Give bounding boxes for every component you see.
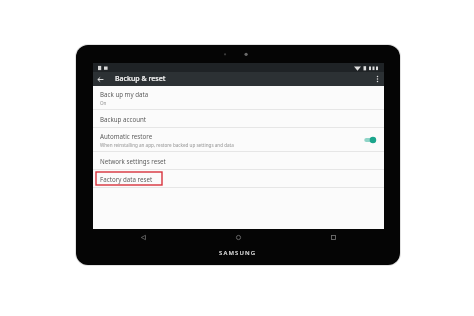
button[interactable]: Back up my data xyxy=(93,86,384,109)
button[interactable]: Backup account xyxy=(93,110,384,127)
button[interactable]: Home xyxy=(231,230,245,244)
staticText: Automatic restore xyxy=(100,132,153,140)
button[interactable]: Automatic restore toggle xyxy=(362,135,377,145)
button[interactable]: More options xyxy=(370,72,384,86)
staticText: Backup & reset xyxy=(115,74,166,84)
staticText: When reinstalling an app, restore backed… xyxy=(100,142,234,148)
button[interactable]: Automatic restore xyxy=(93,128,384,151)
button[interactable]: Factory data reset xyxy=(93,170,384,187)
staticText: Backup account xyxy=(100,115,147,123)
button[interactable]: Navigate up xyxy=(93,72,107,86)
staticText: On xyxy=(100,100,107,106)
staticText: SAMSUNG xyxy=(219,249,257,257)
button[interactable]: Network settings reset xyxy=(93,152,384,169)
button[interactable]: Back xyxy=(136,230,150,244)
staticText: Network settings reset xyxy=(100,157,166,165)
staticText: Back up my data xyxy=(100,90,149,98)
button[interactable]: Recent apps xyxy=(326,230,340,244)
staticText: Factory data reset xyxy=(100,175,153,183)
